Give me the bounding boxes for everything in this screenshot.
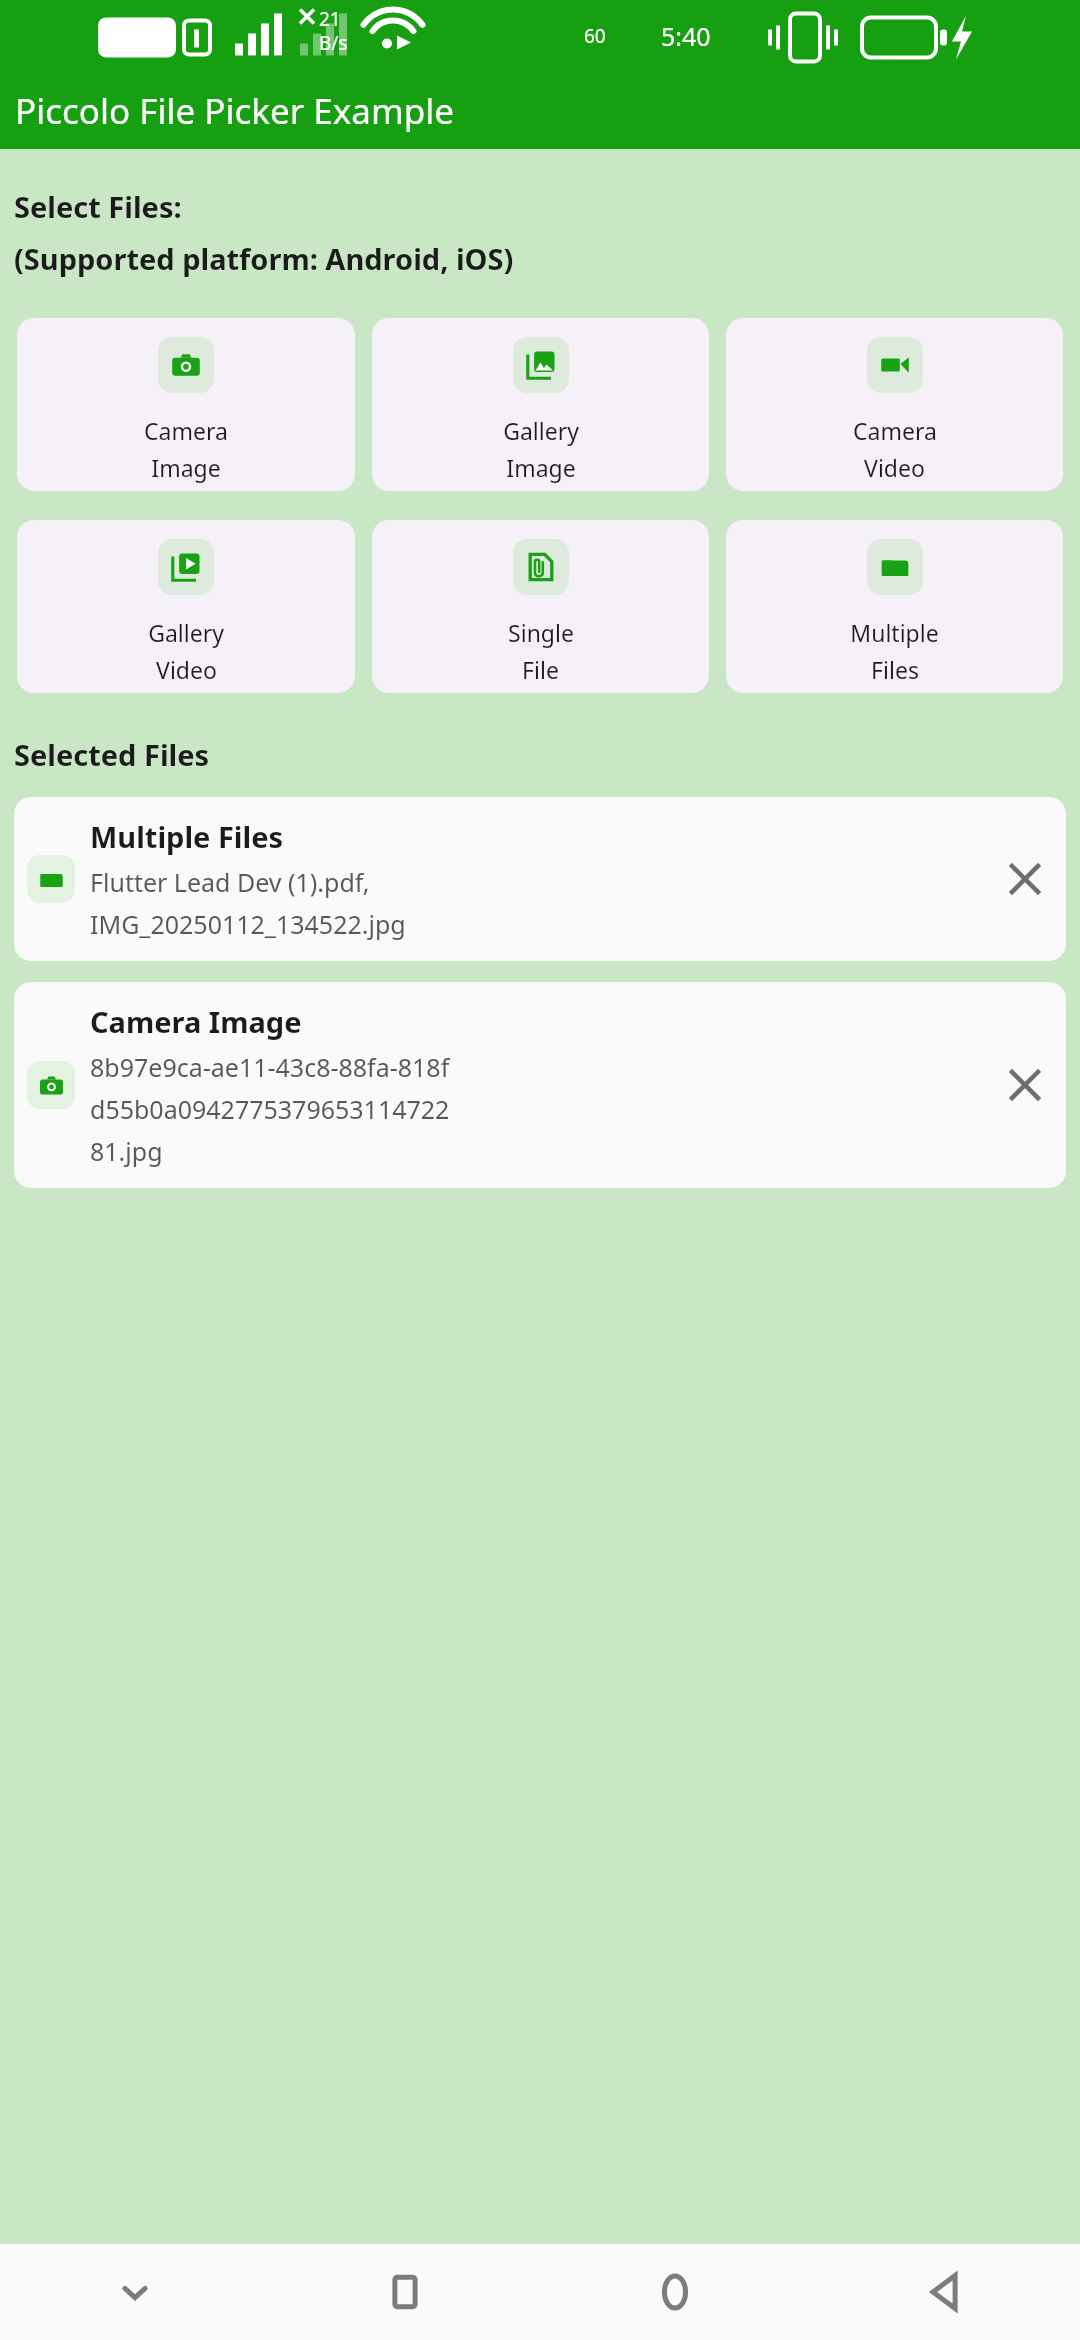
staticText: Camera (853, 415, 937, 446)
button[interactable]: Remove Multiple Files (997, 851, 1053, 907)
staticText: Video (156, 654, 217, 685)
staticText: Image (151, 452, 221, 483)
button[interactable]: Single (372, 520, 709, 693)
button[interactable]: Hide keyboard (0, 2244, 270, 2340)
staticText: File (522, 654, 559, 685)
button[interactable]: Back (810, 2244, 1080, 2340)
button[interactable]: Camera Image (14, 982, 1066, 1188)
staticText: Files (871, 654, 919, 685)
button[interactable]: Camera (726, 318, 1063, 491)
staticText: Image (506, 452, 576, 483)
staticText: IMG_20250112_134522.jpg (90, 907, 406, 941)
button[interactable]: Camera (17, 318, 355, 491)
button[interactable]: Remove Camera Image (997, 1057, 1053, 1113)
button[interactable]: Home (540, 2244, 810, 2340)
staticText: Flutter Lead Dev (1).pdf, (90, 865, 370, 899)
staticText: 81.jpg (90, 1134, 163, 1168)
staticText: (Supported platform: Android, iOS) (14, 239, 514, 278)
staticText: 5:40 (661, 19, 711, 53)
staticText: Piccolo File Picker Example (15, 87, 454, 135)
staticText: Multiple Files (90, 817, 284, 856)
staticText: 8b97e9ca-ae11-43c8-88fa-818f (90, 1050, 450, 1084)
staticText: Camera Image (90, 1002, 302, 1041)
staticText: Gallery (148, 617, 224, 648)
staticText: Gallery (503, 415, 579, 446)
staticText: Selected Files (14, 735, 210, 774)
staticText: Multiple (850, 617, 939, 648)
staticText: B/s (319, 30, 348, 56)
button[interactable]: Gallery (17, 520, 355, 693)
staticText: Camera (144, 415, 228, 446)
staticText: Video (864, 452, 925, 483)
staticText: 21 (319, 6, 341, 32)
staticText: 60 (584, 23, 606, 49)
staticText: Single (508, 617, 574, 648)
button[interactable]: Multiple (726, 520, 1063, 693)
button[interactable]: Gallery (372, 318, 709, 491)
staticText: d55b0a0942775379653114722 (90, 1092, 450, 1126)
staticText: Select Files: (14, 187, 182, 226)
button[interactable]: Recents (270, 2244, 540, 2340)
button[interactable]: Multiple Files (14, 797, 1066, 961)
